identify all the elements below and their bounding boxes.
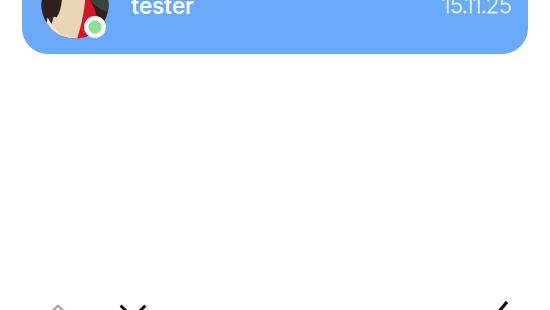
button[interactable]: Compose [484,300,512,310]
staticText: tester [131,0,194,19]
button[interactable]: Home [45,304,73,310]
button[interactable]: Favorites [119,304,147,310]
button[interactable]: tester [22,0,528,54]
staticText: 15.11.25 [442,0,512,19]
